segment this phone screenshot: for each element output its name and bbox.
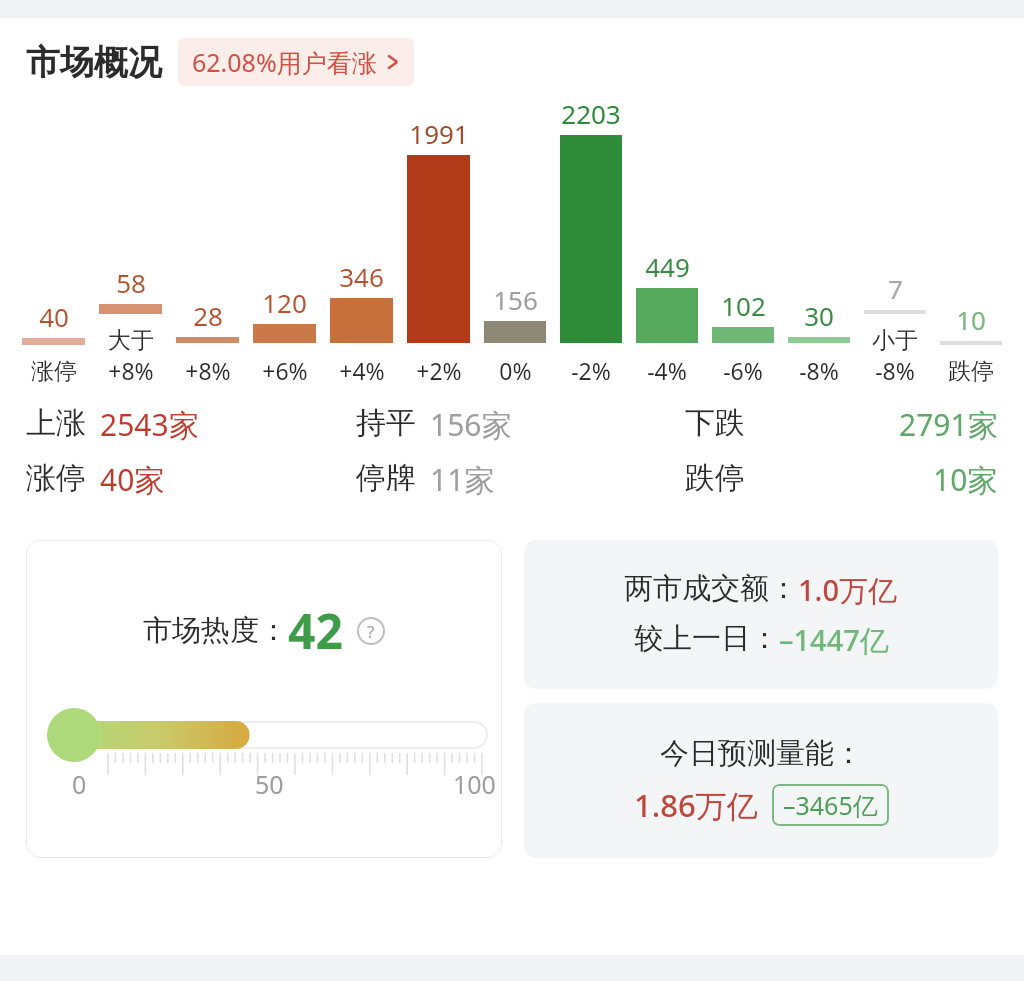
staticText: -8% — [799, 355, 839, 386]
staticText: 停牌 — [356, 459, 416, 497]
staticText: 7 — [888, 271, 903, 306]
staticText: ? — [367, 620, 375, 643]
staticText: 涨停 — [31, 357, 77, 386]
staticText: 今日预测量能： — [660, 735, 863, 772]
staticText: 10 — [956, 302, 986, 337]
staticText: 1.0万亿 — [798, 570, 898, 610]
staticText: 120 — [262, 285, 307, 320]
staticText: 156 — [493, 282, 538, 317]
staticText: 小于 — [872, 326, 918, 355]
staticText: 156家 — [430, 404, 512, 445]
staticText: 2203 — [561, 96, 621, 131]
staticText: 1991 — [409, 116, 469, 151]
staticText: 11家 — [430, 459, 495, 500]
staticText: -6% — [723, 355, 763, 386]
staticText: 跌停 — [948, 357, 994, 386]
staticText: –3465亿 — [783, 788, 878, 822]
staticText: 62.08%用户看涨 — [192, 45, 377, 79]
staticText: 较上一日： — [634, 620, 779, 657]
staticText: +8% — [185, 355, 231, 386]
staticText: 持平 — [356, 404, 416, 442]
staticText: 0% — [499, 355, 532, 386]
staticText: 346 — [339, 259, 384, 294]
staticText: 大于 — [108, 326, 154, 355]
staticText: +2% — [416, 355, 462, 386]
button[interactable]: 两市成交额： — [524, 540, 998, 689]
staticText: –1447亿 — [779, 620, 889, 660]
button[interactable]: 市场热度： — [26, 540, 502, 858]
staticText: 100 — [453, 767, 496, 801]
staticText: 下跌 — [685, 404, 745, 442]
staticText: 1.86万亿 — [634, 784, 758, 826]
staticText: 40家 — [100, 459, 165, 500]
staticText: 两市成交额： — [624, 570, 798, 607]
staticText: 市场概况 — [26, 41, 162, 84]
staticText: +6% — [262, 355, 308, 386]
staticText: -4% — [647, 355, 687, 386]
staticText: 涨停 — [26, 459, 86, 497]
staticText: 42 — [288, 598, 343, 663]
staticText: 0 — [72, 767, 87, 801]
button[interactable]: 62.08%用户看涨 — [178, 38, 414, 86]
staticText: 市场热度： — [143, 612, 288, 649]
staticText: 449 — [645, 249, 690, 284]
staticText: 58 — [116, 265, 146, 300]
staticText: +4% — [339, 355, 385, 386]
staticText: -2% — [571, 355, 611, 386]
staticText: 40 — [39, 299, 69, 334]
staticText: 10家 — [933, 459, 998, 500]
staticText: 50 — [255, 767, 284, 801]
staticText: 2791家 — [899, 404, 998, 445]
button[interactable]: 今日预测量能： — [524, 703, 998, 858]
staticText: 30 — [804, 298, 834, 333]
staticText: 2543家 — [100, 404, 199, 445]
staticText: +8% — [108, 355, 154, 386]
staticText: -8% — [875, 355, 915, 386]
staticText: 102 — [721, 288, 766, 323]
button[interactable]: 帮助说明 — [357, 617, 385, 645]
staticText: 28 — [193, 298, 223, 333]
staticText: 上涨 — [26, 404, 86, 442]
staticText: 跌停 — [685, 459, 745, 497]
